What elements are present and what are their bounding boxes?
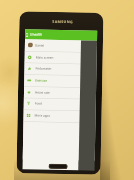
- button[interactable]: Food: [24, 97, 80, 110]
- button[interactable]: Open navigation drawer: [25, 31, 28, 37]
- staticText: Main screen: [36, 55, 54, 60]
- staticText: Heart rate: [35, 90, 50, 95]
- button[interactable]: Heart rate: [24, 86, 80, 99]
- button[interactable]: Exercise: [24, 74, 80, 87]
- staticText: Daniel: [35, 43, 45, 48]
- staticText: S health: [30, 32, 42, 37]
- staticText: Food: [35, 101, 43, 106]
- button[interactable]: More apps: [23, 109, 80, 122]
- button[interactable]: Home: [48, 164, 68, 169]
- button[interactable]: Main screen: [25, 51, 81, 64]
- button[interactable]: Daniel: [25, 39, 81, 51]
- staticText: Exercise: [35, 78, 47, 83]
- staticText: Pedometer: [35, 66, 52, 71]
- staticText: SAMSUNG: [52, 19, 73, 24]
- staticText: More apps: [34, 113, 51, 118]
- button[interactable]: Pedometer: [24, 62, 81, 75]
